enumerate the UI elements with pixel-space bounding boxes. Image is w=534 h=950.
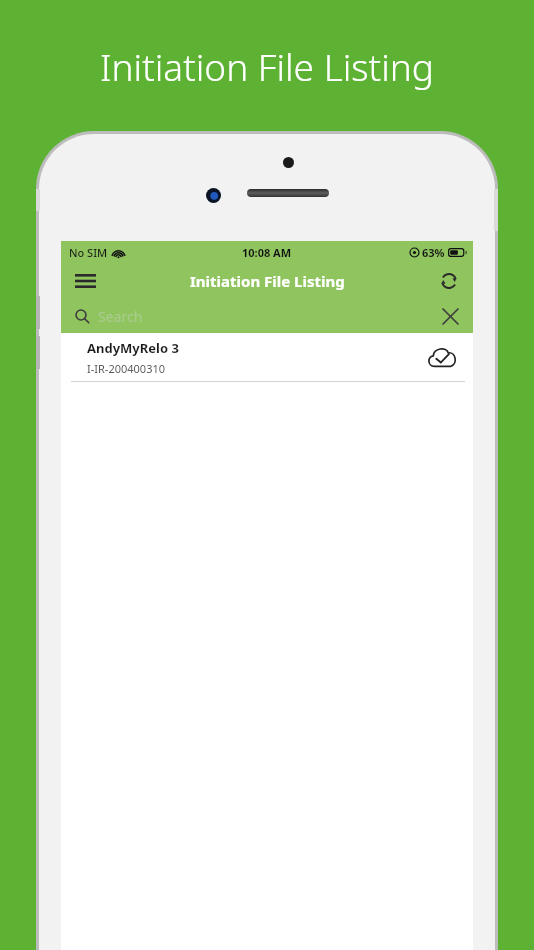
button[interactable]: Search [61,299,473,333]
button[interactable]: Menu [69,265,101,297]
staticText: Search [98,307,143,326]
staticText: 63% [422,245,445,260]
staticText: Initiation File Listing [100,41,434,91]
button[interactable]: Refresh [433,265,465,297]
staticText: AndyMyRelo 3 [87,339,179,357]
button[interactable]: AndyMyRelo 3 [61,333,473,381]
staticText: 10:08 AM [242,245,292,260]
staticText: Initiation File Listing [190,271,345,291]
staticText: I-IR-200400310 [87,361,166,376]
staticText: No SIM [69,245,108,260]
button[interactable]: Clear search [435,301,465,331]
button[interactable]: Synced to cloud [425,340,459,374]
